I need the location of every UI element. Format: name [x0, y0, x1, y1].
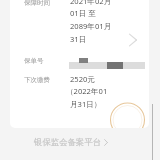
button[interactable]: 保障时间 — [0, 0, 160, 50]
staticText: 2089年01月 — [70, 21, 112, 31]
staticText: 2520元 — [70, 74, 95, 84]
staticText: 01日 至 — [70, 8, 96, 18]
staticText: 2021年02月 — [70, 0, 112, 6]
button[interactable]: 保单号 — [0, 52, 160, 72]
staticText: 保障时间 — [24, 0, 50, 7]
staticText: （2022年01 — [66, 86, 108, 96]
other: 查看保障时间 — [128, 33, 138, 47]
button[interactable]: 下次缴费 — [0, 72, 160, 116]
button[interactable]: 银保监会备案平台 — [34, 137, 108, 148]
staticText: 月31日） — [70, 99, 102, 109]
staticText: 31日 — [70, 34, 87, 44]
staticText: 保单号 — [24, 57, 44, 65]
staticText: 下次缴费 — [24, 76, 50, 84]
staticText: 银保监会备案平台 — [34, 137, 102, 148]
